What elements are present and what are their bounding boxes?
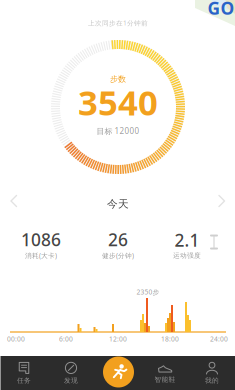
staticText: 智能鞋 bbox=[154, 375, 175, 384]
staticText: 18:00 bbox=[161, 335, 179, 343]
button[interactable]: 我的 bbox=[188, 356, 235, 390]
staticText: 12:00 bbox=[109, 335, 127, 343]
staticText: 目标 12000 bbox=[96, 126, 139, 136]
staticText: 6:00 bbox=[59, 335, 73, 343]
staticText: 3540 bbox=[78, 79, 158, 125]
staticText: 1086 bbox=[21, 228, 61, 251]
staticText: 我的 bbox=[205, 376, 219, 385]
staticText: 消耗(大卡) bbox=[25, 251, 57, 260]
staticText: 任务 bbox=[17, 376, 31, 385]
button[interactable]: 智能鞋 bbox=[141, 356, 188, 390]
staticText: 00:00 bbox=[7, 335, 25, 343]
staticText: 26 bbox=[108, 228, 128, 251]
staticText: GO bbox=[207, 0, 234, 19]
staticText: 发现 bbox=[64, 376, 78, 385]
button[interactable]: 任务 bbox=[0, 356, 47, 390]
button[interactable]: 发现 bbox=[47, 356, 94, 390]
staticText: 24:00 bbox=[210, 335, 228, 343]
staticText: 步数 bbox=[110, 74, 126, 84]
staticText: 2.1 bbox=[174, 228, 199, 251]
staticText: 上次同步在1分钟前 bbox=[88, 19, 148, 27]
staticText: 运动强度 bbox=[173, 251, 201, 260]
staticText: 健步(分钟) bbox=[102, 251, 134, 260]
button[interactable]: Activity bbox=[101, 355, 135, 389]
button[interactable]: Previous day bbox=[0, 187, 28, 215]
button[interactable]: Next day bbox=[208, 187, 235, 215]
staticText: 今天 bbox=[107, 197, 129, 210]
staticText: 2350步 bbox=[136, 288, 159, 296]
